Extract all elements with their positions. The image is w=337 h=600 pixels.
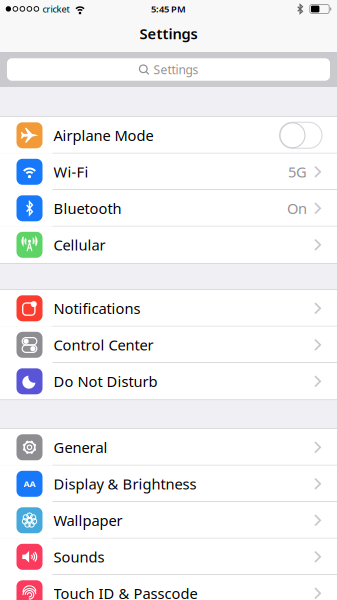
button[interactable]: Bluetooth	[0, 190, 337, 227]
staticText: Control Center	[53, 335, 153, 355]
staticText: Touch ID & Passcode	[53, 584, 197, 600]
staticText: Do Not Disturb	[53, 372, 157, 391]
staticText: 5G	[288, 162, 307, 182]
staticText: Wi-Fi	[53, 162, 88, 182]
button[interactable]: Touch ID & Passcode	[0, 575, 337, 600]
button[interactable]: Do Not Disturb	[0, 363, 337, 400]
button[interactable]: Airplane Mode	[0, 117, 337, 153]
button[interactable]: General	[0, 429, 337, 465]
staticText: General	[53, 438, 107, 457]
staticText: cricket	[42, 3, 69, 15]
staticText: AA	[23, 478, 35, 490]
button[interactable]: Cellular	[0, 227, 337, 263]
staticText: Bluetooth	[53, 199, 121, 218]
button[interactable]: Search	[7, 58, 330, 81]
staticText: Display & Brightness	[53, 474, 196, 494]
staticText: Airplane Mode	[53, 126, 153, 145]
button[interactable]: AA	[0, 465, 337, 502]
button[interactable]: Notifications	[0, 290, 337, 327]
staticText: Cellular	[53, 235, 105, 255]
staticText: On	[287, 199, 307, 218]
staticText: Settings	[153, 61, 198, 77]
staticText: Wallpaper	[53, 511, 122, 530]
button[interactable]: Sounds	[0, 538, 337, 575]
staticText: 5:45 PM	[151, 3, 186, 15]
button[interactable]: Control Center	[0, 327, 337, 363]
staticText: Notifications	[53, 299, 140, 318]
staticText: Sounds	[53, 547, 104, 567]
staticText: Settings	[139, 24, 197, 43]
button[interactable]: Wi-Fi	[0, 154, 337, 190]
button[interactable]: Wallpaper	[0, 502, 337, 538]
